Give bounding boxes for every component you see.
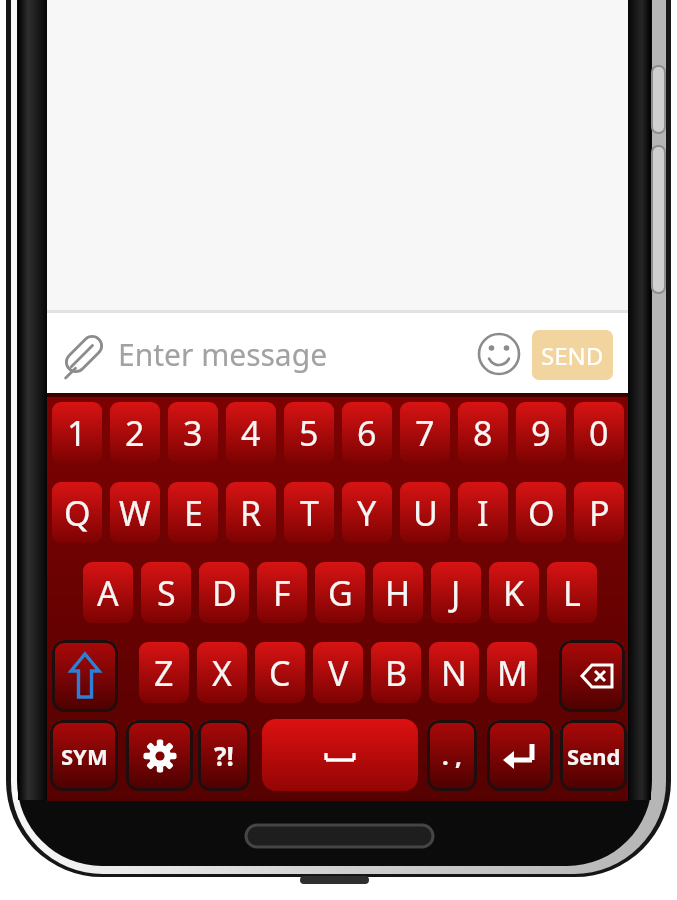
button[interactable] — [262, 719, 418, 791]
button[interactable]: E — [168, 482, 218, 543]
button[interactable]: A — [83, 562, 133, 623]
staticText: G — [328, 570, 353, 616]
staticText: . , — [442, 739, 462, 772]
button[interactable]: F — [257, 562, 307, 623]
button[interactable]: X — [197, 642, 247, 703]
staticText: M — [497, 650, 528, 696]
staticText: K — [503, 570, 525, 616]
button[interactable]: Send — [560, 720, 627, 791]
staticText: ?! — [214, 738, 234, 773]
button[interactable]: 8 — [458, 402, 508, 463]
staticText: 4 — [241, 410, 261, 456]
button[interactable]: I — [458, 482, 508, 543]
button[interactable]: K — [489, 562, 539, 623]
button[interactable]: 5 — [284, 402, 334, 463]
button[interactable]: O — [516, 482, 566, 543]
staticText: N — [441, 650, 467, 696]
staticText: SEND — [541, 339, 604, 372]
staticText: U — [413, 490, 438, 536]
button[interactable]: 7 — [400, 402, 450, 463]
staticText: 7 — [415, 410, 435, 456]
button[interactable]: D — [199, 562, 249, 623]
staticText: W — [119, 490, 151, 536]
staticText: C — [269, 650, 291, 696]
staticText: 0 — [589, 410, 609, 456]
staticText: X — [212, 650, 232, 696]
staticText: 2 — [125, 410, 145, 456]
button[interactable]: SEND — [532, 330, 613, 380]
button[interactable]: 0 — [574, 402, 624, 463]
button[interactable]: 6 — [342, 402, 392, 463]
button[interactable]: Y — [342, 482, 392, 543]
staticText: F — [273, 570, 291, 616]
staticText: V — [328, 650, 349, 696]
staticText: 3 — [183, 410, 203, 456]
button[interactable]: ?! — [198, 720, 250, 791]
staticText: A — [97, 570, 119, 616]
button[interactable]: V — [313, 642, 363, 703]
button[interactable]: 4 — [226, 402, 276, 463]
button[interactable]: W — [110, 482, 160, 543]
staticText: SYM — [61, 741, 108, 771]
staticText: L — [563, 570, 581, 616]
staticText: Enter message — [118, 334, 328, 375]
button[interactable]: L — [547, 562, 597, 623]
staticText: O — [528, 490, 555, 536]
button[interactable]: R — [226, 482, 276, 543]
button[interactable]: M — [487, 642, 537, 703]
button[interactable]: S — [141, 562, 191, 623]
button[interactable]: T — [284, 482, 334, 543]
staticText: S — [157, 570, 176, 616]
button[interactable]: P — [574, 482, 624, 543]
button[interactable]: G — [315, 562, 365, 623]
button[interactable]: . , — [427, 720, 477, 791]
button[interactable]: Z — [139, 642, 189, 703]
staticText: P — [589, 490, 610, 536]
button[interactable]: N — [429, 642, 479, 703]
button[interactable] — [126, 720, 193, 791]
button[interactable] — [52, 640, 118, 712]
button[interactable]: 9 — [516, 402, 566, 463]
staticText: T — [300, 490, 319, 536]
staticText: Send — [567, 741, 621, 771]
button[interactable] — [559, 640, 625, 712]
button[interactable]: H — [373, 562, 423, 623]
staticText: 1 — [67, 410, 87, 456]
button[interactable]: B — [371, 642, 421, 703]
staticText: D — [212, 570, 237, 616]
staticText: R — [240, 490, 262, 536]
staticText: Q — [64, 490, 91, 536]
staticText: 6 — [357, 410, 377, 456]
staticText: H — [385, 570, 411, 616]
staticText: 9 — [531, 410, 551, 456]
button[interactable]: 3 — [168, 402, 218, 463]
staticText: 8 — [473, 410, 493, 456]
staticText: B — [385, 650, 408, 696]
button[interactable] — [487, 720, 553, 791]
button[interactable]: 2 — [110, 402, 160, 463]
staticText: J — [451, 570, 461, 616]
staticText: 5 — [299, 410, 319, 456]
staticText: Y — [357, 490, 377, 536]
button[interactable]: J — [431, 562, 481, 623]
button[interactable]: SYM — [50, 720, 118, 791]
staticText: E — [184, 490, 203, 536]
button[interactable]: U — [400, 482, 450, 543]
button[interactable]: Q — [52, 482, 102, 543]
button[interactable]: 1 — [52, 402, 102, 463]
staticText: Z — [154, 650, 174, 696]
staticText: I — [477, 490, 489, 536]
button[interactable]: C — [255, 642, 305, 703]
